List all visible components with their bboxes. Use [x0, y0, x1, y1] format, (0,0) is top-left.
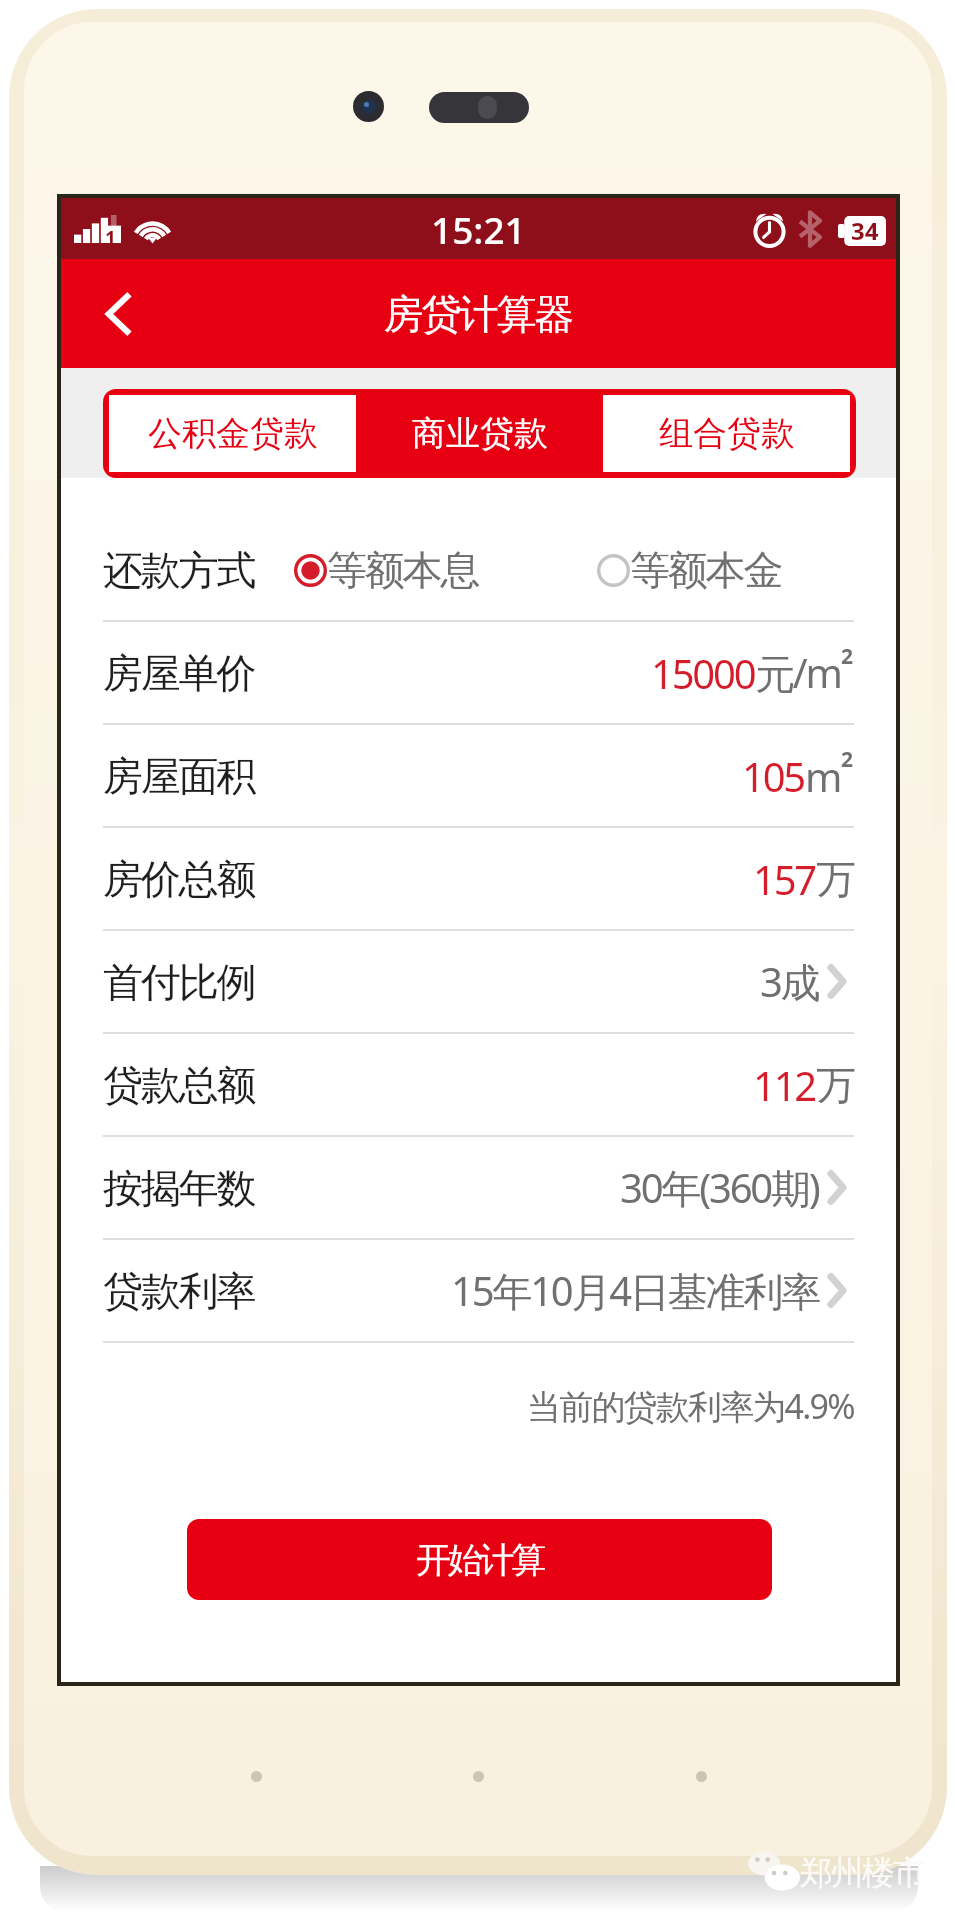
staticText: m — [805, 749, 841, 803]
staticText: 首付比例 — [103, 957, 255, 1007]
staticText: 开始计算 — [416, 1538, 544, 1582]
staticText: 3成 — [760, 954, 819, 1009]
staticText: 房屋单价 — [103, 648, 255, 698]
staticText: 当前的贷款利率为4.9% — [527, 1383, 854, 1429]
staticText: 15年10月4日基准利率 — [451, 1263, 819, 1318]
staticText: 郑州楼市 — [801, 1852, 925, 1894]
button[interactable]: 房屋面积 — [103, 725, 854, 826]
button[interactable]: 按揭年数 — [103, 1137, 854, 1238]
staticText: 2 — [841, 642, 854, 671]
button[interactable]: 贷款利率 — [103, 1240, 854, 1341]
staticText: 贷款总额 — [103, 1060, 255, 1110]
staticText: 万 — [816, 1060, 854, 1110]
button[interactable]: 返回 — [82, 269, 154, 359]
staticText: 组合贷款 — [659, 412, 795, 455]
staticText: 房价总额 — [103, 854, 255, 904]
staticText: 元/m — [755, 645, 841, 700]
staticText: 按揭年数 — [103, 1163, 255, 1213]
button[interactable]: 首付比例 — [103, 931, 854, 1032]
staticText: 157 — [753, 852, 816, 906]
staticText: 15000 — [651, 646, 755, 700]
button[interactable]: 贷款总额 — [103, 1034, 854, 1135]
button[interactable]: 组合贷款 — [603, 395, 850, 472]
button[interactable]: 商业贷款 — [356, 395, 603, 472]
staticText: 34 — [851, 214, 879, 247]
button[interactable]: 公积金贷款 — [109, 395, 356, 472]
staticText: 商业贷款 — [412, 412, 548, 455]
staticText: 112 — [753, 1058, 816, 1112]
staticText: 等额本息 — [327, 545, 479, 595]
staticText: 贷款利率 — [103, 1266, 255, 1316]
button[interactable]: 开始计算 — [187, 1519, 772, 1600]
staticText: 30年(360期) — [620, 1160, 819, 1215]
button[interactable]: 还款方式 — [103, 519, 854, 620]
staticText: 15:21 — [431, 204, 526, 254]
staticText: 公积金贷款 — [148, 412, 318, 455]
button[interactable]: 房屋单价 — [103, 622, 854, 723]
staticText: 房屋面积 — [103, 751, 255, 801]
staticText: 105 — [742, 749, 805, 803]
staticText: 万 — [816, 854, 854, 904]
button[interactable]: 房价总额 — [103, 828, 854, 929]
staticText: 房贷计算器 — [385, 289, 573, 339]
staticText: 还款方式 — [103, 545, 255, 595]
staticText: 等额本金 — [630, 545, 782, 595]
staticText: 1 — [105, 225, 116, 251]
staticText: 2 — [841, 745, 854, 774]
